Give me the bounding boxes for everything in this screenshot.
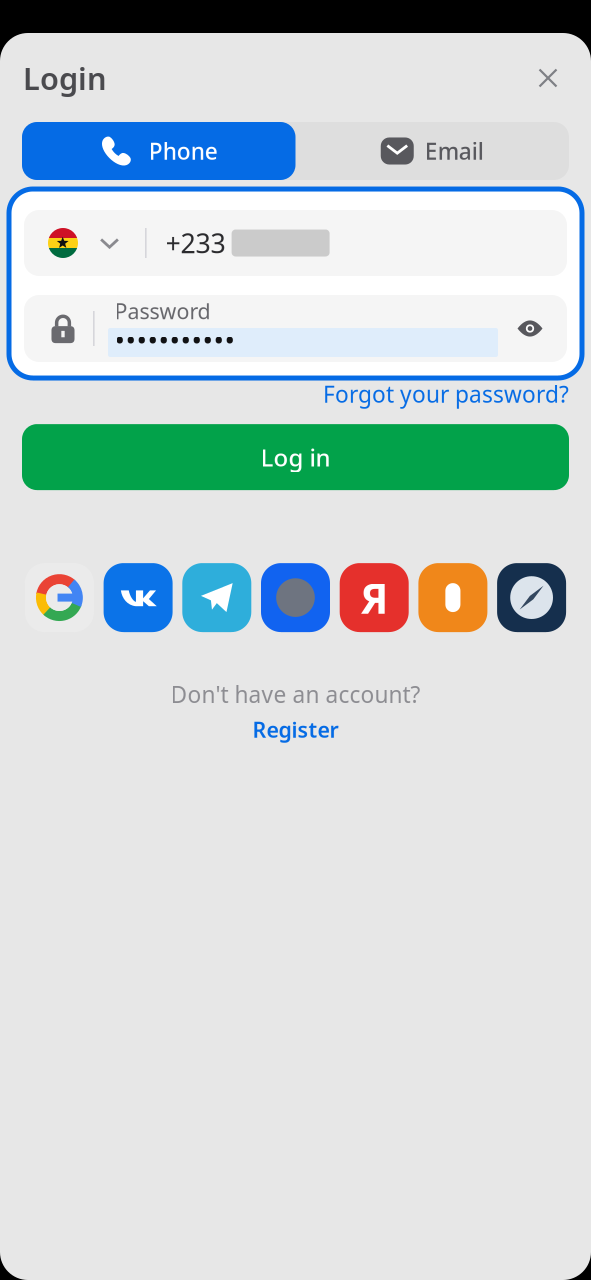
button[interactable]: Continue with Google (25, 563, 94, 632)
button[interactable]: Log in (22, 424, 569, 490)
button[interactable]: Phone (22, 122, 295, 180)
staticText: Email (425, 136, 484, 166)
staticText: Login (23, 58, 107, 98)
staticText: Я (360, 570, 388, 625)
staticText: Register (252, 715, 338, 743)
button[interactable]: Forgot your password? (323, 379, 569, 409)
staticText: Phone (149, 136, 218, 166)
staticText: Forgot your password? (323, 379, 569, 409)
button[interactable]: Email (295, 122, 569, 180)
button[interactable]: Continue with Yandex (340, 563, 409, 632)
button[interactable]: Register (252, 715, 338, 743)
staticText: +233 (166, 225, 226, 261)
staticText: ••••••••••• (115, 321, 236, 358)
button[interactable]: Continue with Mail.ru (497, 563, 566, 632)
button[interactable]: Continue with Odnoklassniki (418, 563, 487, 632)
button[interactable]: Continue with VK (104, 563, 173, 632)
button[interactable]: Show password (507, 305, 553, 351)
button[interactable]: Continue with Telegram (182, 563, 251, 632)
button[interactable]: Close (533, 63, 563, 93)
staticText: Log in (260, 441, 330, 473)
staticText: Don't have an account? (170, 679, 420, 709)
staticText: Password (115, 297, 211, 325)
button[interactable]: Continue with Apple (261, 563, 330, 632)
